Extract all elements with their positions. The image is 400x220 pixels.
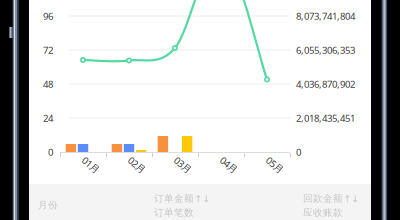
staticText: 8,073,741,804: [296, 9, 355, 23]
staticText: 订单金额↑↓: [154, 192, 210, 205]
staticText: 4,036,870,902: [296, 77, 355, 91]
staticText: 月份: [38, 199, 58, 211]
staticText: 96: [43, 9, 53, 23]
staticText: 05月: [265, 158, 285, 172]
staticText: 01月: [81, 158, 101, 172]
staticText: 03月: [173, 158, 193, 172]
staticText: 2,018,435,451: [296, 111, 355, 125]
staticText: 02月: [127, 158, 147, 172]
staticText: 回款金额↑↓: [303, 192, 359, 205]
staticText: 04月: [219, 158, 239, 172]
staticText: 48: [43, 77, 53, 91]
staticText: 72: [43, 43, 53, 57]
staticText: 0: [296, 145, 301, 159]
staticText: 6,055,306,353: [296, 43, 355, 57]
staticText: 0: [48, 145, 53, 159]
staticText: 24: [43, 111, 53, 125]
staticText: 应收账款: [303, 206, 343, 219]
staticText: 订单笔数: [154, 206, 194, 219]
